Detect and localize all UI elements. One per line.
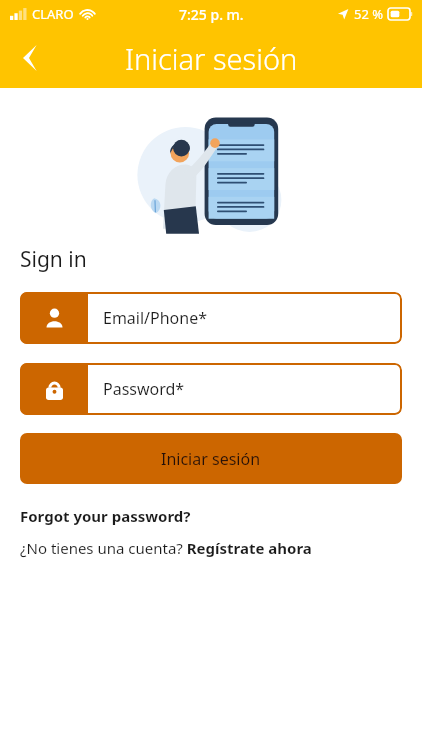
- button[interactable]: Forgot your password?: [20, 506, 191, 526]
- staticText: Password*: [103, 378, 185, 400]
- button[interactable]: ¿No tienes una cuenta? Regístrate ahora: [20, 538, 312, 558]
- staticText: 7:25 p. m.: [179, 5, 244, 24]
- staticText: CLARO: [32, 5, 74, 23]
- button[interactable]: Iniciar sesión: [20, 433, 402, 484]
- staticText: Iniciar sesión: [161, 448, 261, 470]
- button[interactable]: Back: [6, 35, 52, 81]
- staticText: Email/Phone*: [103, 307, 208, 329]
- staticText: Sign in: [20, 245, 87, 274]
- staticText: Iniciar sesión: [125, 39, 298, 78]
- button[interactable]: Password*: [20, 363, 402, 415]
- button[interactable]: Email/Phone*: [20, 292, 402, 344]
- staticText: 52 %: [354, 5, 384, 23]
